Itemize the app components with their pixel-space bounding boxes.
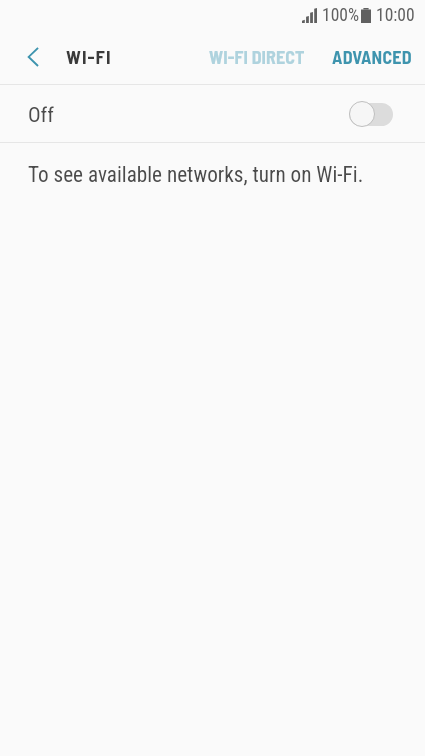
button[interactable]: WI-FI DIRECT [202, 37, 312, 79]
staticText: Off [28, 103, 54, 128]
staticText: ADVANCED [332, 46, 412, 68]
button[interactable]: Off [0, 85, 425, 142]
staticText: To see available networks, turn on Wi-Fi… [28, 162, 364, 187]
button[interactable]: Navigate up [0, 31, 52, 84]
staticText: 100% [322, 5, 359, 26]
staticText: 10:00 [376, 5, 415, 26]
button[interactable]: ADVANCED [325, 37, 419, 79]
staticText: WI-FI DIRECT [209, 46, 305, 68]
staticText: WI-FI [66, 45, 112, 68]
